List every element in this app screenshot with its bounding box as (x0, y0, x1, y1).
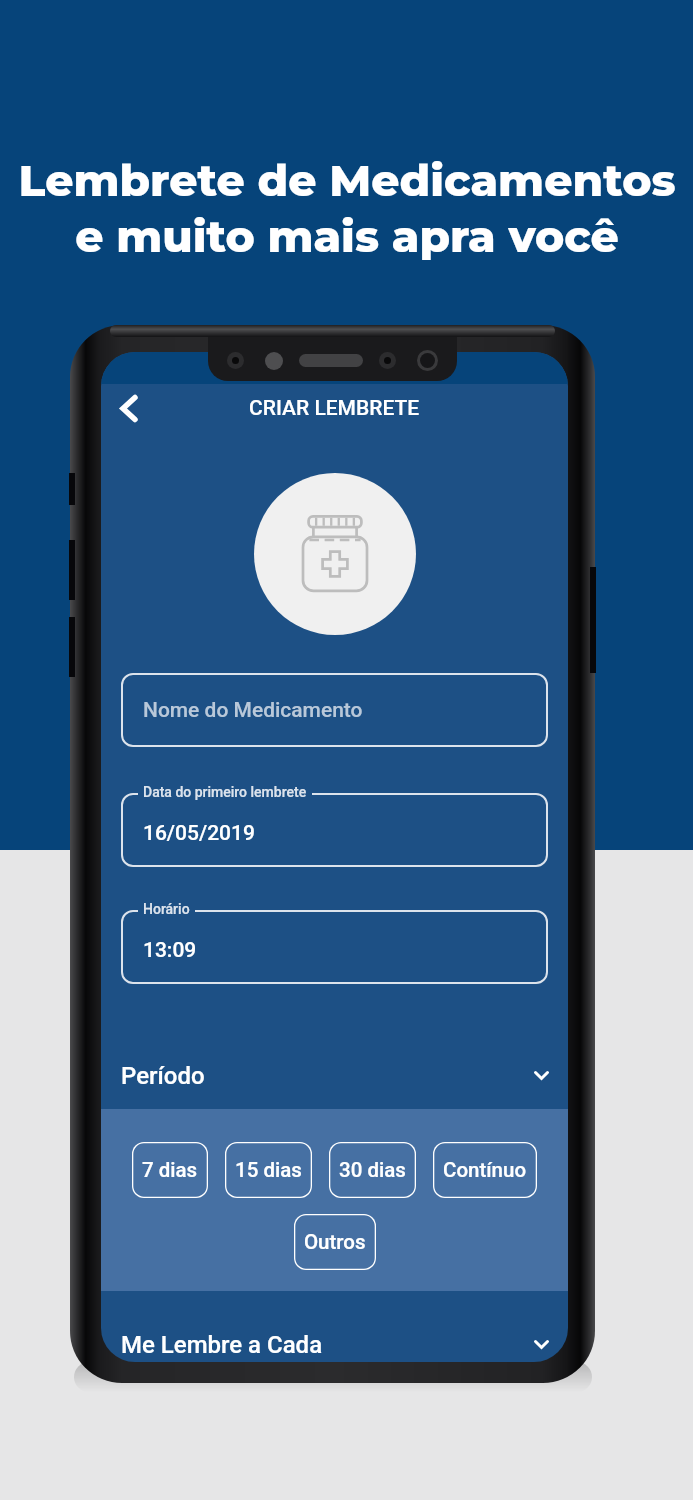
button[interactable]: Outros (294, 1214, 376, 1270)
button[interactable]: Contínuo (433, 1142, 537, 1198)
staticText: Lembrete de Medicamentos e muito mais ap… (18, 153, 676, 263)
button[interactable]: Nome do Medicamento (122, 674, 547, 746)
staticText: CRIAR LEMBRETE (249, 396, 420, 421)
staticText: Nome do Medicamento (143, 698, 363, 723)
staticText: 15 dias (235, 1158, 302, 1182)
staticText: 16/05/2019 (143, 821, 255, 846)
button[interactable]: Me Lembre a Cada (101, 1327, 568, 1362)
staticText: 7 dias (142, 1158, 198, 1182)
button[interactable]: Horário (122, 911, 547, 983)
staticText: Data do primeiro lembrete (143, 784, 307, 800)
button[interactable]: Voltar (107, 386, 151, 430)
staticText: Horário (143, 901, 190, 917)
staticText: 13:09 (143, 938, 197, 963)
staticText: Outros (304, 1230, 366, 1254)
button[interactable]: Data do primeiro lembrete (122, 794, 547, 866)
staticText: Me Lembre a Cada (121, 1331, 323, 1359)
staticText: Período (121, 1062, 205, 1090)
staticText: Contínuo (443, 1158, 527, 1182)
button[interactable]: Período (101, 1042, 568, 1109)
button[interactable]: 7 dias (132, 1142, 208, 1198)
button[interactable]: 30 dias (329, 1142, 416, 1198)
button[interactable]: 15 dias (225, 1142, 312, 1198)
staticText: 30 dias (339, 1158, 406, 1182)
